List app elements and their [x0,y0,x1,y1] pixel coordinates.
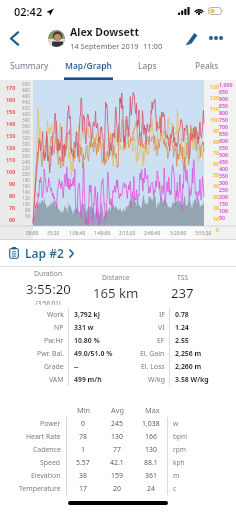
staticText: 1 [81,445,85,454]
staticText: EF [157,336,165,345]
staticText: w [173,419,179,428]
staticText: Alex Dowsett [70,25,139,39]
staticText: 130 [111,432,123,441]
staticText: 3:55:20 [26,280,71,298]
staticText: Pwr. Bal. [37,349,64,358]
staticText: 20 [113,484,121,493]
staticText: 88.1 [144,458,158,467]
staticText: Min [77,405,91,415]
staticText: 160 [22,183,31,189]
staticText: 20 [213,204,219,211]
staticText: 130 [210,83,219,90]
staticText: 420 [22,105,31,111]
staticText: 2,256 m [175,349,202,358]
staticText: 159 [111,471,123,480]
staticText: 650 [219,130,228,137]
staticText: 90 [9,180,16,187]
staticText: 120 [22,195,31,201]
staticText: 130 [6,132,16,139]
staticText: 260 [22,153,31,159]
button[interactable]: Laps [118,54,177,78]
staticText: 700 [219,123,228,130]
staticText: 100 [210,116,219,123]
staticText: 2,260 m [175,362,202,371]
staticText: Lap #2 [25,245,64,261]
staticText: 380 [22,117,31,123]
staticText: 80 [213,138,219,145]
staticText: VI [158,323,165,332]
staticText: 499 m/h [74,375,102,384]
staticText: 0.78 [175,310,189,319]
staticText: 38 [79,471,87,480]
staticText: 160 [6,96,16,103]
staticText: rpm [173,445,186,454]
staticText: 42.1 [110,458,124,467]
staticText: 60 [213,160,219,167]
staticText: 90 [213,127,219,134]
staticText: 550 [219,144,228,151]
staticText: 50 [213,171,219,178]
staticText: 220 [22,165,31,171]
staticText: Max [145,405,160,415]
staticText: 245 [111,419,123,428]
staticText: Peaks [195,60,219,72]
staticText: 360 [22,123,31,129]
staticText: 340 [22,129,31,135]
staticText: Work [47,310,64,319]
staticText: 60 [9,216,16,223]
staticText: 70 [9,204,16,211]
staticText: 100 [22,201,31,207]
button[interactable]: Back [0,22,28,54]
staticText: 2.55 [175,336,189,345]
button[interactable]: Alex Dowsett [48,25,163,51]
staticText: 120 [6,144,16,151]
staticText: kph [173,458,185,467]
staticText: 10 [213,215,219,222]
staticText: El. Gain [140,349,165,358]
staticText: 400 [219,165,228,172]
staticText: 140 [22,189,31,195]
staticText: 17 [79,484,87,493]
staticText: Pw:Hr [44,336,64,345]
staticText: 24 [147,484,155,493]
staticText: 200 [219,193,228,200]
staticText: 331 w [74,323,94,332]
staticText: m [173,471,180,480]
staticText: 250 [219,186,228,193]
staticText: 280 [22,147,31,153]
staticText: 00:00 [26,230,39,237]
button[interactable]: Map/Graph [59,54,118,78]
staticText: 166 [145,432,157,441]
button[interactable]: Peaks [177,54,236,78]
staticText: 77 [113,445,121,454]
staticText: NP [54,323,64,332]
button[interactable]: Lap #2 [9,240,236,266]
staticText: 30 [213,193,219,200]
staticText: Grade [44,362,64,371]
button[interactable]: Summary [0,54,59,78]
staticText: 460 [22,93,31,99]
button[interactable]: More options [205,27,227,49]
staticText: Laps [138,60,157,72]
staticText: 180 [22,177,31,183]
staticText: 11:00 [143,41,163,51]
staticText: -- [74,362,79,371]
staticText: Distance [102,273,130,282]
staticText: 150 [6,108,16,115]
staticText: 800 [219,109,228,116]
staticText: W/kg [148,375,165,384]
staticText: 110 [6,156,16,163]
staticText: Heart Rate [26,432,61,441]
staticText: 49.0/51.0 % [74,349,113,358]
staticText: 200 [22,171,31,177]
staticText: 33:20 [47,230,60,237]
staticText: 2:13:20 [119,230,136,237]
staticText: 150 [219,200,228,207]
staticText: 60 [25,213,31,219]
staticText: Speed [40,458,61,467]
staticText: 3.58 W/kg [175,375,209,384]
staticText: El. Loss [141,362,165,371]
button[interactable]: Edit [180,27,202,49]
staticText: 750 [219,116,228,123]
staticText: IF [159,310,165,319]
